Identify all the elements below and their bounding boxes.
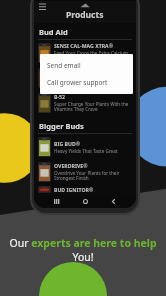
staticText: B-52 <box>54 93 66 100</box>
staticText: Overdrive Your Plants for their Stronges… <box>54 170 132 182</box>
button[interactable]: REVIVE <box>38 65 132 90</box>
staticText: Put Your Plants Back Into Peak Condition <box>54 76 132 88</box>
staticText: SENSI CAL-MAG XTRA® <box>54 42 113 49</box>
button[interactable]: Call grower support <box>40 74 133 91</box>
button[interactable]: Send email <box>40 57 133 74</box>
staticText: Our experts are here to help You! <box>0 236 166 264</box>
button[interactable]: B-52 <box>38 90 132 115</box>
staticText: Super Charge Your Plants With the Vitami… <box>54 101 132 113</box>
staticText: Heavy Yields That Taste Great <box>54 148 118 154</box>
button[interactable]: BUD IGNITOR® <box>38 184 132 195</box>
staticText: BUD IGNITOR® <box>54 186 94 193</box>
button[interactable]: BIG BUD® <box>38 134 132 159</box>
staticText: Send email <box>47 61 81 70</box>
button[interactable]: Recents <box>50 195 63 208</box>
staticText: Call grower support <box>47 78 108 87</box>
staticText: BIG BUD® <box>54 140 81 147</box>
staticText: Bud Aid <box>39 27 68 37</box>
button[interactable]: OVERDRIVE® <box>38 159 132 184</box>
staticText: Bigger Buds <box>39 121 84 131</box>
staticText: Products <box>66 9 104 21</box>
button[interactable]: Home <box>79 195 92 208</box>
button[interactable]: SENSI CAL-MAG XTRA® <box>38 40 132 65</box>
button[interactable]: Menu <box>38 3 46 11</box>
staticText: OVERDRIVE® <box>54 162 88 169</box>
button[interactable]: Back <box>107 195 120 208</box>
staticText: Feed Your Crops the Extra Calcium, Magne… <box>54 50 132 63</box>
